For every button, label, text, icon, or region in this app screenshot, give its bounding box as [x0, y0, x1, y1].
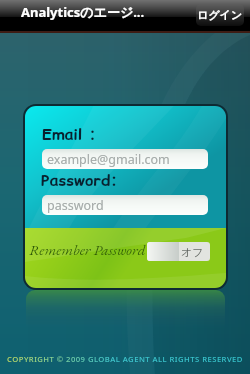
staticText: オフ — [181, 245, 204, 259]
staticText: example@gmail.com — [47, 151, 170, 168]
staticText: ログイン — [197, 8, 243, 22]
staticText: Remember Password — [29, 240, 146, 260]
staticText: COPYRIGHT © 2009 GLOBAL AGENT ALL RIGHTS… — [7, 354, 243, 364]
staticText: Analyticsのエージ... — [21, 3, 145, 21]
staticText: Email : — [42, 123, 97, 145]
staticText: password — [47, 197, 104, 214]
staticText: Password: — [41, 169, 118, 191]
button[interactable]: example@gmail.com — [42, 149, 208, 169]
button[interactable]: ログイン — [196, 4, 244, 26]
button[interactable]: password — [42, 195, 208, 215]
button[interactable]: オフ — [147, 242, 210, 261]
